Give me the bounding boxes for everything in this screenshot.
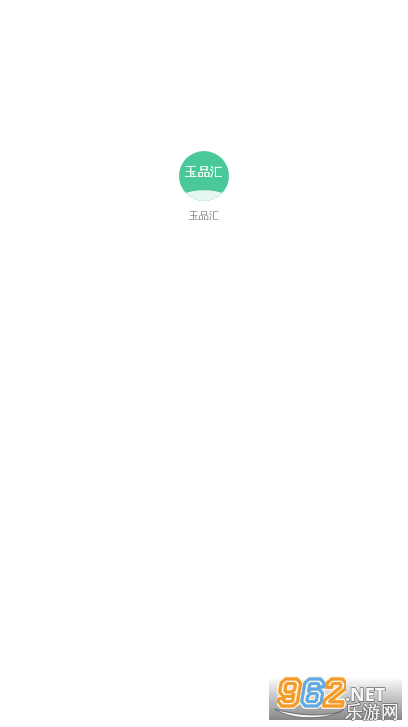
staticText: .NET [345, 682, 386, 707]
button[interactable]: 玉品汇 app logo [179, 151, 229, 201]
staticText: 962 [277, 669, 346, 711]
staticText: 962 [277, 669, 346, 711]
staticText: 玉品汇 [189, 209, 219, 222]
staticText: 玉品汇 [185, 164, 223, 180]
staticText: 乐游网 [345, 701, 399, 724]
staticText: .NET [345, 682, 386, 707]
staticText: 乐游网 [345, 701, 399, 724]
